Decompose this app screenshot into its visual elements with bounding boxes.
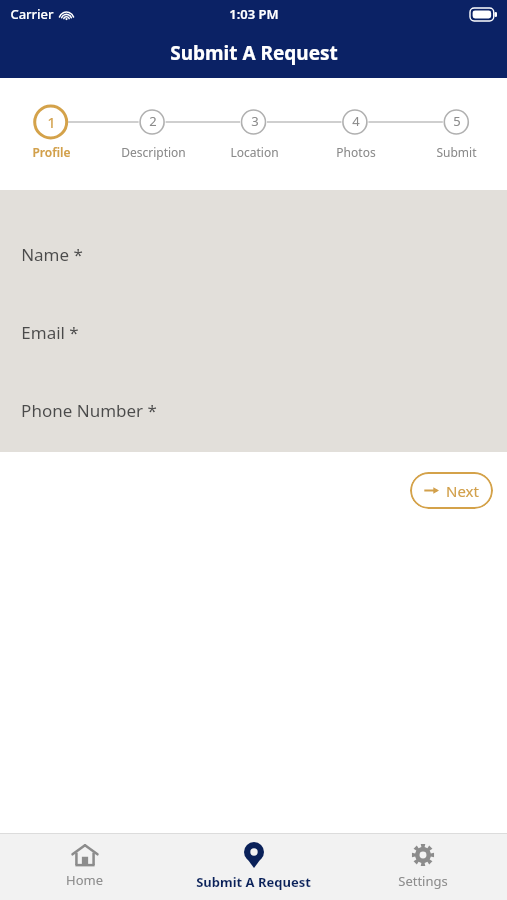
staticText: Submit A Request	[170, 40, 338, 66]
button[interactable]: Location	[204, 144, 305, 160]
staticText: Settings	[398, 872, 448, 890]
staticText: Description	[121, 144, 186, 160]
staticText: Carrier	[10, 5, 54, 23]
staticText: 1	[47, 112, 56, 132]
staticText: 2	[149, 112, 157, 130]
staticText: Home	[66, 871, 103, 889]
button[interactable]: Photos	[305, 144, 406, 160]
staticText: Name *	[21, 243, 83, 266]
staticText: Location	[230, 144, 279, 160]
button[interactable]: Next	[410, 472, 493, 509]
staticText: 4	[352, 112, 360, 130]
button[interactable]: Description	[102, 144, 204, 160]
staticText: Next	[446, 481, 479, 501]
staticText: 1:03 PM	[229, 5, 279, 23]
staticText: Phone Number *	[21, 399, 157, 422]
button[interactable]: Submit	[406, 144, 507, 160]
button[interactable]: Settings	[338, 833, 507, 900]
staticText: Submit	[436, 144, 477, 160]
staticText: Profile	[32, 144, 71, 160]
button[interactable]: Profile	[0, 144, 102, 160]
button[interactable]: Home	[0, 833, 169, 900]
staticText: 5	[453, 112, 461, 130]
staticText: 3	[251, 112, 259, 130]
staticText: Photos	[336, 144, 376, 160]
staticText: Email *	[21, 321, 79, 344]
button[interactable]: Submit A Request	[169, 833, 338, 900]
staticText: Submit A Request	[196, 873, 311, 891]
